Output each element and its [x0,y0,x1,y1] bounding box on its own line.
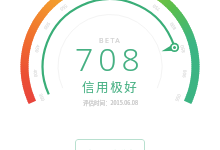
button[interactable]: 查看评估详情 [75,139,145,150]
staticText: 评估时间：2015.06.08 [83,99,138,107]
staticText: 信用极好 [82,77,139,95]
staticText: 708 [75,37,145,81]
staticText: BETA [99,36,122,46]
